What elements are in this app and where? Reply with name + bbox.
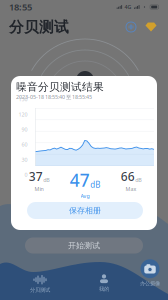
staticText: 30 <box>21 156 27 163</box>
button[interactable]: VIP membership <box>143 19 159 35</box>
button[interactable]: 保存相册 <box>27 202 143 219</box>
staticText: 2023-05-18 18:55:40 至 18:55:45 <box>16 93 92 101</box>
staticText: 开始测试 <box>68 241 100 250</box>
staticText: 噪音分贝测试结果 <box>16 80 104 93</box>
staticText: 4G <box>125 3 132 11</box>
staticText: dB <box>90 179 100 190</box>
staticText: 办公摄像 <box>140 280 160 287</box>
staticText: 保存相册 <box>69 206 101 215</box>
staticText: 120 <box>18 111 27 118</box>
staticText: Min <box>34 185 43 192</box>
button[interactable]: Audio settings <box>123 19 139 35</box>
staticText: 60 <box>21 141 27 148</box>
button[interactable]: 办公摄像 <box>132 259 168 287</box>
staticText: Max <box>125 185 136 192</box>
button[interactable]: 我的 <box>86 272 122 294</box>
staticText: 150 <box>18 96 27 103</box>
staticText: 37 <box>29 168 43 184</box>
staticText: dB <box>135 176 141 183</box>
staticText: 47 <box>70 168 90 191</box>
staticText: 18:55 <box>9 1 32 13</box>
button[interactable]: 分贝测试 <box>22 273 58 295</box>
staticText: 0 <box>24 171 27 178</box>
staticText: 分贝测试 <box>9 18 69 36</box>
staticText: 90 <box>21 126 27 133</box>
staticText: 分贝测试 <box>30 287 50 293</box>
staticText: 66 <box>121 168 135 184</box>
button[interactable]: 开始测试 <box>25 237 143 253</box>
staticText: 我的 <box>99 286 109 292</box>
staticText: dB <box>43 176 49 183</box>
staticText: Avg <box>80 192 89 200</box>
